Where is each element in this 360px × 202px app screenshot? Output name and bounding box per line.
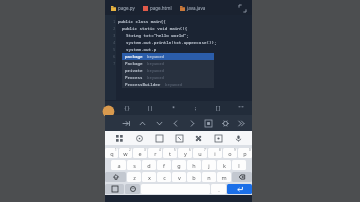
staticText: 1 bbox=[113, 19, 116, 24]
button[interactable]: package bbox=[122, 53, 214, 60]
button[interactable]: Translate bbox=[173, 132, 185, 144]
button[interactable]: Down bbox=[152, 116, 166, 130]
button[interactable]: Tab bbox=[119, 116, 133, 130]
button[interactable]: i bbox=[208, 148, 222, 158]
staticText: y bbox=[184, 150, 187, 157]
button[interactable]: v bbox=[172, 172, 186, 182]
button[interactable]: Expand editor bbox=[236, 2, 248, 14]
staticText: 0 bbox=[249, 148, 251, 152]
button[interactable]: Keyboard switcher bbox=[113, 132, 125, 144]
button[interactable]: Up bbox=[135, 116, 149, 130]
staticText: page.py bbox=[118, 5, 135, 11]
button[interactable]: ; bbox=[189, 102, 202, 115]
button[interactable]: y bbox=[178, 148, 192, 158]
button[interactable]: Enter bbox=[227, 184, 252, 194]
staticText: java.java bbox=[187, 5, 206, 11]
button[interactable]: Right bbox=[185, 116, 199, 130]
button[interactable]: private bbox=[122, 67, 214, 74]
staticText: keyword bbox=[147, 75, 164, 80]
button[interactable]: More bbox=[234, 116, 248, 130]
button[interactable]: . bbox=[211, 184, 226, 194]
staticText: d bbox=[147, 162, 151, 169]
staticText: [] bbox=[215, 105, 222, 112]
button[interactable]: x bbox=[142, 172, 156, 182]
staticText: {} bbox=[124, 105, 131, 112]
button[interactable]: c bbox=[157, 172, 171, 182]
staticText: private bbox=[125, 68, 143, 74]
staticText: package bbox=[125, 54, 143, 60]
staticText: i bbox=[214, 150, 216, 157]
button[interactable]: s bbox=[127, 160, 141, 170]
button[interactable]: Process bbox=[122, 74, 214, 81]
button[interactable]: a bbox=[111, 160, 126, 170]
button[interactable]: h bbox=[187, 160, 201, 170]
staticText: 7 bbox=[204, 148, 206, 152]
staticText: v bbox=[178, 174, 181, 181]
button[interactable]: m bbox=[217, 172, 231, 182]
staticText: q bbox=[110, 150, 114, 157]
staticText: r bbox=[154, 150, 157, 157]
staticText: c bbox=[163, 174, 166, 181]
staticText: k bbox=[223, 162, 226, 169]
button[interactable]: Shift bbox=[105, 172, 126, 182]
button[interactable]: Package bbox=[122, 60, 214, 67]
staticText: j bbox=[208, 162, 210, 169]
staticText: z bbox=[133, 174, 136, 181]
button[interactable]: page.py bbox=[110, 5, 136, 11]
button[interactable]: o bbox=[223, 148, 237, 158]
button[interactable]: Backspace bbox=[232, 172, 252, 182]
button[interactable]: n bbox=[202, 172, 216, 182]
button[interactable]: () bbox=[144, 102, 157, 115]
button[interactable]: j bbox=[202, 160, 216, 170]
button[interactable]: "" bbox=[235, 102, 248, 115]
staticText: Process bbox=[125, 75, 143, 81]
button[interactable]: Run bbox=[201, 116, 215, 130]
staticText: 6 bbox=[113, 54, 116, 59]
button[interactable]: * bbox=[167, 102, 180, 115]
button[interactable]: Settings bbox=[218, 116, 232, 130]
staticText: . bbox=[218, 186, 220, 193]
button[interactable]: Left bbox=[168, 116, 182, 130]
button[interactable]: b bbox=[187, 172, 201, 182]
staticText: a bbox=[117, 162, 121, 169]
staticText: o bbox=[228, 150, 232, 157]
button[interactable]: Emoji bbox=[125, 184, 140, 194]
button[interactable]: Clipboard bbox=[153, 132, 165, 144]
button[interactable]: t bbox=[163, 148, 177, 158]
button[interactable]: k bbox=[217, 160, 231, 170]
button[interactable]: Symbols bbox=[105, 184, 124, 194]
button[interactable]: {} bbox=[121, 102, 134, 115]
staticText: system.out.println(txt.uppercase()); bbox=[126, 40, 217, 46]
button[interactable]: l bbox=[232, 160, 246, 170]
staticText: "" bbox=[238, 105, 245, 112]
button[interactable]: GIF bbox=[133, 132, 145, 144]
button[interactable]: java.java bbox=[179, 5, 207, 11]
button[interactable]: Emoji bbox=[192, 132, 204, 144]
button[interactable]: page.html bbox=[142, 5, 173, 11]
button[interactable]: d bbox=[142, 160, 156, 170]
button[interactable]: e bbox=[133, 148, 147, 158]
button[interactable]: q bbox=[105, 148, 118, 158]
button[interactable]: w bbox=[119, 148, 132, 158]
staticText: 5 bbox=[113, 47, 116, 52]
staticText: 2 bbox=[113, 26, 116, 31]
button[interactable]: p bbox=[238, 148, 252, 158]
staticText: m bbox=[221, 174, 227, 181]
button[interactable]: Settings bbox=[212, 132, 224, 144]
button[interactable]: r bbox=[148, 148, 162, 158]
button[interactable]: ProcessBuilder bbox=[122, 81, 214, 88]
staticText: n bbox=[207, 174, 211, 181]
button[interactable]: f bbox=[157, 160, 171, 170]
button[interactable]: Voice input bbox=[232, 132, 244, 144]
staticText: u bbox=[198, 150, 202, 157]
button[interactable]: g bbox=[172, 160, 186, 170]
staticText: ProcessBuilder bbox=[125, 82, 161, 88]
staticText: g bbox=[177, 162, 181, 169]
button[interactable]: [] bbox=[212, 102, 225, 115]
button[interactable]: u bbox=[193, 148, 207, 158]
staticText: x bbox=[148, 174, 151, 181]
staticText: t bbox=[169, 150, 171, 157]
button[interactable]: z bbox=[127, 172, 141, 182]
staticText: 8 bbox=[219, 148, 221, 152]
